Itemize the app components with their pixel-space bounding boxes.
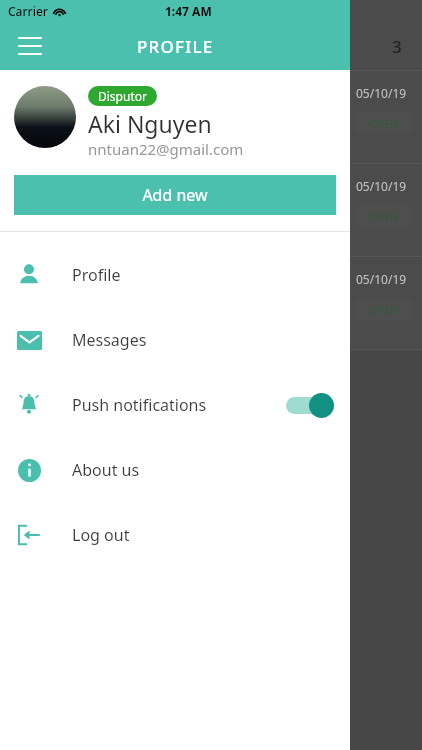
staticText: 1:47 AM (165, 3, 212, 19)
staticText: Add new (142, 184, 208, 206)
button[interactable]: Profile (0, 242, 350, 307)
staticText: OPEN (369, 302, 399, 317)
button[interactable]: Push notifications toggle (286, 392, 334, 418)
staticText: Push notifications (72, 394, 207, 416)
staticText: Aki Nguyen (88, 108, 212, 139)
staticText: 05/10/19 (356, 271, 407, 287)
button[interactable]: About us (0, 437, 350, 502)
staticText: Log out (72, 524, 130, 546)
button[interactable]: Messages (0, 307, 350, 372)
button[interactable]: Open navigation menu (8, 24, 52, 68)
staticText: nntuan22@gmail.com (88, 139, 244, 159)
staticText: Disputor (98, 88, 147, 104)
staticText: 05/10/19 (356, 178, 407, 194)
staticText: OPEN (369, 209, 399, 224)
button[interactable]: Log out (0, 502, 350, 567)
staticText: Carrier (8, 3, 48, 19)
button[interactable]: Add new (14, 175, 336, 215)
staticText: Profile (72, 264, 121, 286)
staticText: PROFILE (137, 35, 214, 58)
staticText: 3 (392, 35, 402, 58)
staticText: OPEN (369, 116, 399, 131)
staticText: About us (72, 459, 140, 481)
staticText: 05/10/19 (356, 85, 407, 101)
staticText: Messages (72, 329, 147, 351)
button[interactable]: Push notifications (0, 372, 350, 437)
